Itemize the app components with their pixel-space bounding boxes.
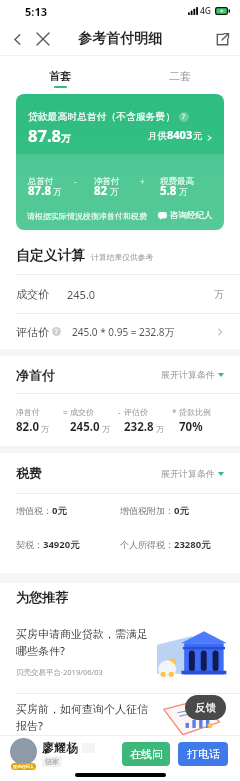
staticText: 请根据实际情况校衡净首付和税费 [27,211,147,221]
button[interactable]: 咨询经纪人 [158,210,213,221]
button[interactable]: 打电话 [178,742,228,766]
staticText: 月供 [148,130,167,142]
button[interactable]: Close [30,26,56,52]
staticText: 评估价 [16,325,49,339]
staticText: 净首付 [94,176,120,187]
staticText: 4G [200,5,212,17]
staticText: = [63,407,68,418]
staticText: 净首付 [16,407,40,417]
staticText: * [172,407,177,418]
staticText: 5.8 [160,183,177,199]
staticText: 廖耀杨 [42,740,78,755]
button[interactable]: 买房申请商业贷款，需满足 哪些条件? [0,611,240,693]
staticText: 个人所得税： [120,539,174,550]
staticText: 万 [41,424,49,434]
staticText: 展开计算条件 [161,468,215,479]
button[interactable]: 展开计算条件 [161,468,224,479]
button[interactable]: 买房前，如何查询个人征信 报告? [0,694,240,740]
staticText: 星光经纪人 [13,764,34,769]
staticText: 万 [110,187,119,198]
staticText: 34920元 [43,538,80,551]
staticText: 245.0 * 0.95 = 232.8万 [72,325,175,339]
staticText: 87.8 [28,124,61,146]
staticText: 增值税附加： [120,505,174,516]
staticText: 净首付 [16,367,55,383]
button[interactable]: 反馈 [185,695,226,720]
button[interactable]: 二套 [120,56,240,94]
staticText: 首套 [49,69,71,83]
staticText: 成交价 [70,407,94,417]
staticText: 贷款最高时总首付（不含服务费） [28,111,175,123]
staticText: 万 [179,187,188,198]
staticText: 增值税： [16,505,52,516]
button[interactable]: Share [209,26,235,52]
staticText: 万 [61,133,71,145]
staticText: 0元 [52,504,67,517]
staticText: 打电话 [187,747,220,761]
button[interactable]: 在线问 [122,742,170,766]
staticText: 万 [156,424,164,434]
staticText: 0元 [174,504,189,517]
staticText: 万 [53,187,62,198]
staticText: 链家 [45,757,59,766]
staticText: 评估价 [124,407,148,417]
staticText: 23280元 [174,538,211,551]
button[interactable]: 首套 [0,56,120,94]
staticText: ? [182,112,186,122]
staticText: 税费 [16,465,42,481]
staticText: 参考首付明细 [78,30,162,48]
staticText: 买房前，如何查询个人征信 报告? [16,702,148,733]
staticText: 展开计算条件 [161,369,215,380]
staticText: 计算结果仅供参考 [91,252,154,262]
staticText: 贝壳交易平台·2019/06/03 [16,667,103,677]
staticText: 成交价 [16,287,49,301]
staticText: - [118,407,121,418]
staticText: 8403 [167,127,193,142]
staticText: 232.8 [124,419,154,435]
staticText: 5:13 [25,4,47,19]
button[interactable]: 展开计算条件 [161,369,224,380]
staticText: 为您推荐 [16,589,68,605]
staticText: 245.0 [70,419,100,435]
staticText: 245.0 [67,287,96,302]
staticText: 万 [102,424,110,434]
staticText: + [140,176,145,187]
staticText: 总首付 [28,176,54,187]
staticText: 在线问 [130,747,163,761]
staticText: 万 [214,288,224,301]
staticText: 买房申请商业贷款，需满足 哪些条件? [16,627,148,658]
button[interactable]: 贷款最高时总首付（不含服务费） [16,94,224,230]
staticText: - [74,176,77,187]
staticText: 元 [193,130,203,142]
staticText: 二套 [169,69,191,83]
staticText: 82.0 [16,419,39,435]
staticText: 自定义计算 [16,247,85,264]
staticText: 契税： [16,539,43,550]
staticText: 贷款比例 [179,407,211,417]
staticText: 咨询经纪人 [170,210,213,221]
staticText: 87.8 [28,183,51,199]
staticText: 反馈 [195,701,216,714]
button[interactable]: Back [4,26,30,52]
button[interactable]: 成交价 [0,275,240,313]
button[interactable]: 月供 [148,127,213,142]
button[interactable]: 评估价 [0,314,240,349]
staticText: ? [55,327,58,336]
staticText: 82 [94,183,108,199]
staticText: 税费最高 [160,176,194,187]
staticText: 70% [179,419,203,435]
